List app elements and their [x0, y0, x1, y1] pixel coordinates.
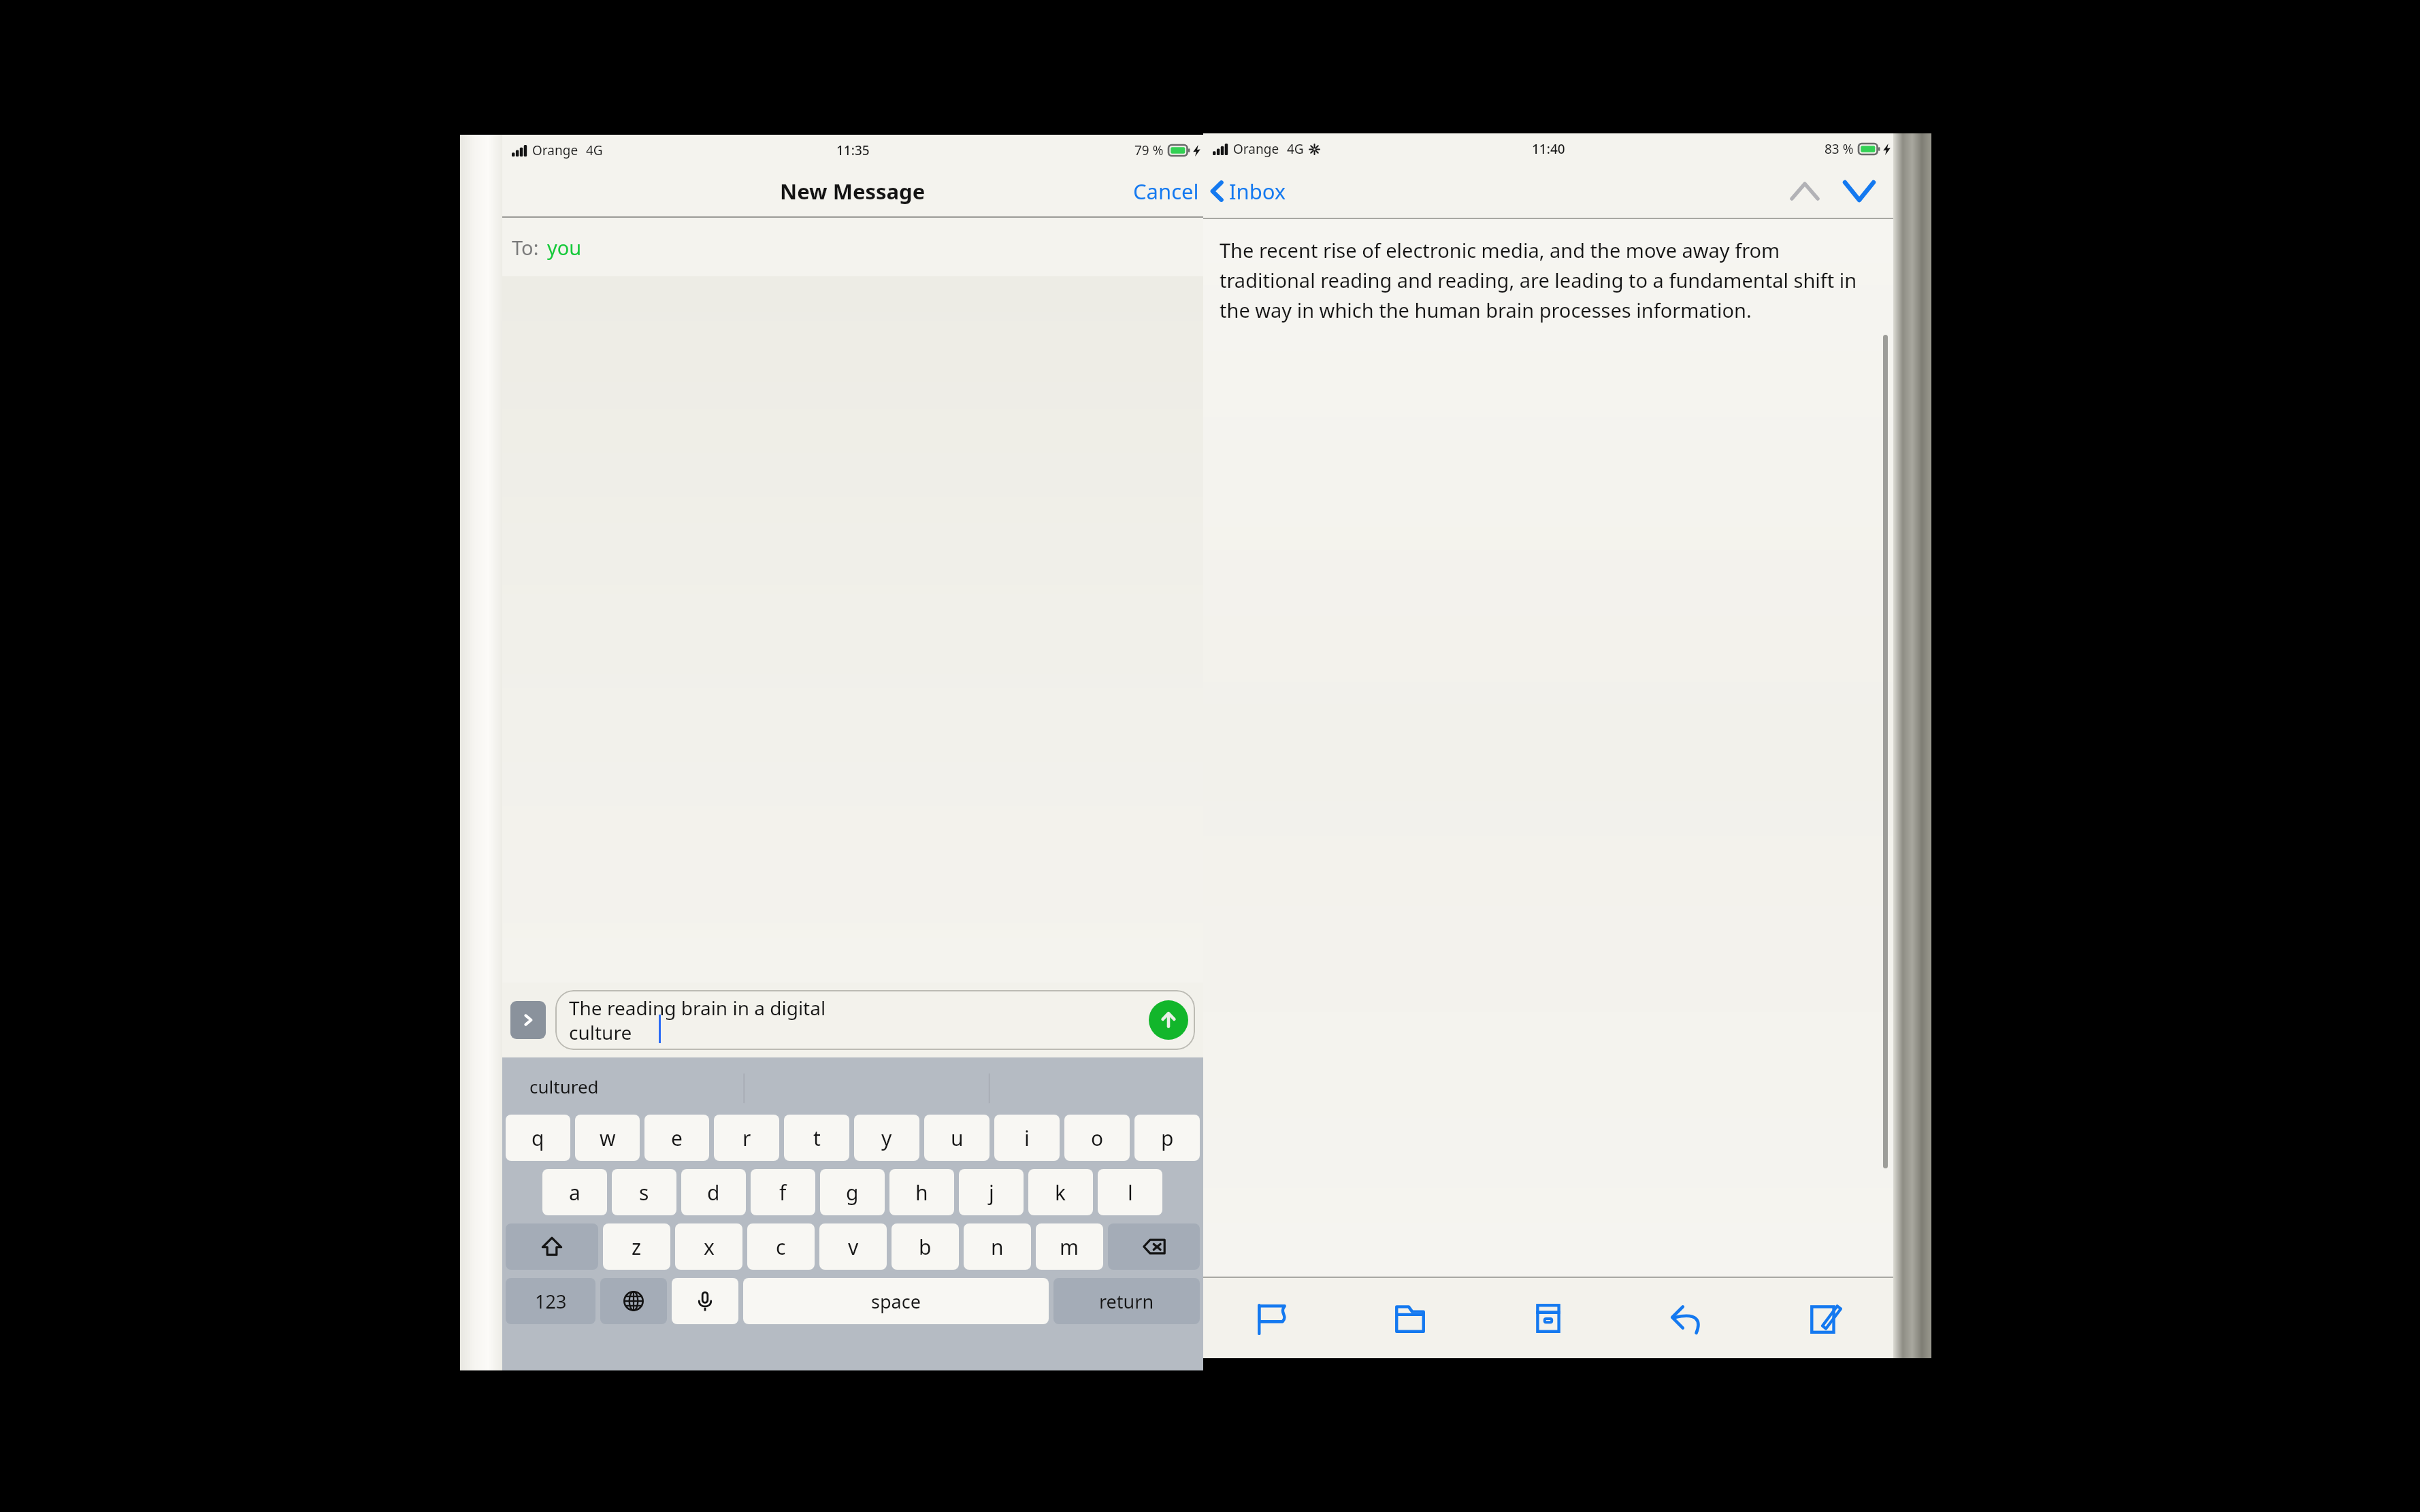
staticText: The reading brain in a digital culture [569, 995, 826, 1045]
staticText: f [779, 1179, 787, 1206]
staticText: 4G [1287, 140, 1304, 158]
button[interactable]: Previous message [1783, 169, 1827, 213]
button[interactable]: o [1064, 1115, 1130, 1161]
staticText: w [600, 1124, 616, 1152]
staticText: l [1128, 1179, 1133, 1206]
staticText: Orange [1233, 140, 1279, 158]
staticText: m [1060, 1233, 1079, 1261]
staticText: u [951, 1124, 964, 1152]
button[interactable]: a [542, 1169, 607, 1215]
button[interactable]: Archive [1479, 1278, 1617, 1358]
staticText: e [671, 1124, 683, 1152]
staticText: 79 % [1134, 142, 1164, 159]
staticText: To: [512, 234, 539, 261]
button[interactable]: Shift [506, 1223, 598, 1270]
button[interactable]: Next message [1837, 169, 1881, 213]
button[interactable]: v [819, 1223, 887, 1270]
staticText: 4G [586, 142, 603, 159]
staticText: i [1024, 1124, 1030, 1152]
staticText: return [1099, 1289, 1154, 1314]
staticText: you [547, 234, 582, 261]
staticText: h [915, 1179, 928, 1206]
staticText: The recent rise of electronic media, and… [1220, 237, 1867, 323]
staticText: 11:40 [1532, 140, 1565, 158]
button[interactable]: Move to folder [1341, 1278, 1479, 1358]
button[interactable]: k [1028, 1169, 1093, 1215]
button[interactable]: f [751, 1169, 815, 1215]
staticText: b [919, 1233, 932, 1261]
button[interactable]: z [603, 1223, 670, 1270]
staticText: v [848, 1233, 859, 1261]
button[interactable]: i [994, 1115, 1060, 1161]
staticText: Inbox [1229, 177, 1286, 206]
staticText: r [742, 1124, 751, 1152]
button[interactable]: t [784, 1115, 849, 1161]
staticText: o [1091, 1124, 1104, 1152]
button[interactable]: g [820, 1169, 885, 1215]
button[interactable]: More apps [510, 1001, 546, 1039]
button[interactable]: space [743, 1278, 1049, 1324]
staticText: Orange [532, 142, 578, 159]
button[interactable]: Cancel [1133, 177, 1199, 206]
staticText: Cancel [1133, 177, 1199, 206]
staticText: p [1161, 1124, 1174, 1152]
staticText: s [639, 1179, 649, 1206]
staticText: z [632, 1233, 642, 1261]
staticText: x [704, 1233, 715, 1261]
button[interactable]: c [747, 1223, 815, 1270]
staticText: t [813, 1124, 821, 1152]
staticText: 11:35 [836, 142, 870, 159]
staticText: g [846, 1179, 859, 1206]
button[interactable]: y [854, 1115, 919, 1161]
staticText: 123 [535, 1289, 567, 1314]
button[interactable]: x [675, 1223, 742, 1270]
button[interactable]: m [1036, 1223, 1103, 1270]
button[interactable]: p [1134, 1115, 1200, 1161]
button[interactable]: Flag [1203, 1278, 1341, 1358]
button[interactable]: Inbox [1209, 177, 1286, 206]
button[interactable]: New Message [780, 177, 926, 206]
staticText: k [1055, 1179, 1066, 1206]
button[interactable]: h [889, 1169, 954, 1215]
staticText: c [776, 1233, 786, 1261]
button[interactable]: Backspace [1108, 1223, 1200, 1270]
button[interactable]: d [681, 1169, 746, 1215]
button[interactable]: n [964, 1223, 1031, 1270]
staticText: space [871, 1289, 921, 1314]
button[interactable]: b [892, 1223, 959, 1270]
button[interactable]: Compose [1755, 1278, 1893, 1358]
button[interactable]: Send [1149, 1000, 1188, 1040]
button[interactable]: l [1098, 1169, 1162, 1215]
staticText: d [707, 1179, 720, 1206]
staticText: y [881, 1124, 892, 1152]
button[interactable]: r [714, 1115, 779, 1161]
button[interactable]: Change keyboard [600, 1278, 667, 1324]
button[interactable]: e [644, 1115, 709, 1161]
staticText: n [991, 1233, 1004, 1261]
button[interactable]: 123 [506, 1278, 595, 1324]
button[interactable]: To: [512, 218, 1203, 276]
staticText: j [989, 1179, 994, 1206]
button[interactable]: The reading brain in a digital culture [555, 990, 1195, 1050]
button[interactable]: w [575, 1115, 640, 1161]
button[interactable]: Reply [1617, 1278, 1755, 1358]
button[interactable]: return [1053, 1278, 1200, 1324]
button[interactable]: cultured [529, 1074, 599, 1098]
staticText: q [532, 1124, 544, 1152]
button[interactable]: Dictate [672, 1278, 738, 1324]
staticText: a [569, 1179, 581, 1206]
button[interactable]: s [612, 1169, 676, 1215]
button[interactable]: j [959, 1169, 1024, 1215]
button[interactable]: q [506, 1115, 570, 1161]
staticText: 83 % [1825, 140, 1854, 158]
button[interactable]: u [924, 1115, 990, 1161]
